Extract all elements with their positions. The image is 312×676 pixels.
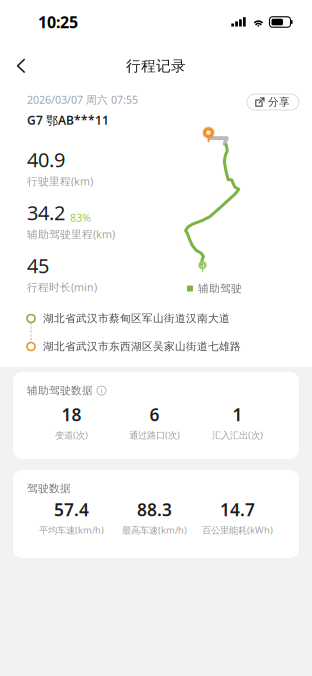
staticText: 88.3 — [137, 498, 172, 521]
button[interactable]: 返回 — [0, 49, 42, 83]
staticText: G7 鄂AB***11 — [27, 112, 109, 128]
staticText: 18 — [61, 403, 81, 426]
staticText: 行程时长(min) — [27, 280, 97, 294]
staticText: 行程记录 — [126, 57, 186, 75]
staticText: 汇入汇出(次) — [212, 429, 263, 441]
staticText: 14.7 — [220, 498, 255, 521]
staticText: 45 — [27, 252, 49, 279]
staticText: 辅助驾驶数据 — [27, 384, 93, 397]
staticText: 变道(次) — [55, 429, 88, 441]
staticText: 83% — [70, 211, 91, 225]
staticText: 湖北省武汉市东西湖区吴家山街道七雄路 — [43, 340, 241, 353]
staticText: 分享 — [268, 95, 290, 108]
staticText: 6 — [149, 403, 159, 426]
staticText: 57.4 — [54, 498, 89, 521]
staticText: 百公里能耗(kWh) — [202, 524, 273, 536]
staticText: 平均车速(km/h) — [39, 524, 104, 536]
staticText: 通过路口(次) — [129, 429, 180, 441]
staticText: 40.9 — [27, 146, 65, 173]
staticText: 驾驶数据 — [27, 482, 71, 495]
staticText: 辅助驾驶 — [198, 282, 242, 295]
staticText: 2026/03/07 周六 07:55 — [27, 92, 138, 107]
staticText: 最高车速(km/h) — [122, 524, 187, 536]
staticText: 34.2 — [27, 199, 65, 226]
staticText: 行驶里程(km) — [27, 174, 93, 188]
staticText: 辅助驾驶里程(km) — [27, 227, 115, 241]
button[interactable]: 分享 — [247, 94, 299, 110]
staticText: 10:25 — [38, 11, 78, 33]
staticText: 湖北省武汉市蔡甸区军山街道汉南大道 — [43, 312, 230, 325]
staticText: 1 — [232, 403, 242, 426]
